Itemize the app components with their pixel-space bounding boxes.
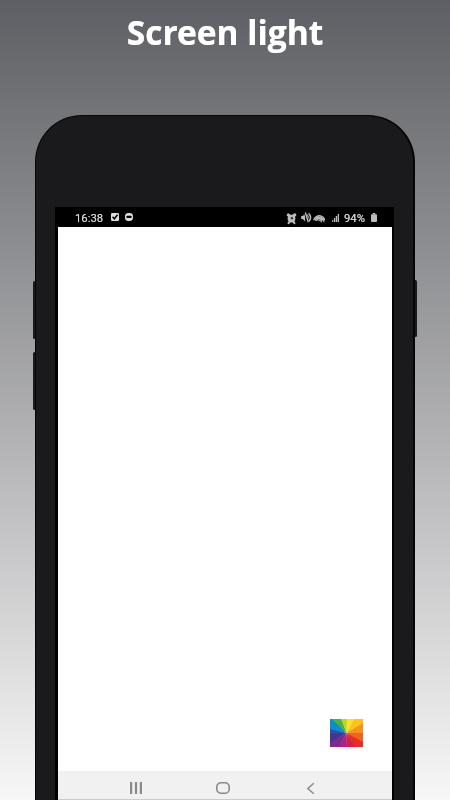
button[interactable]: Recent apps — [114, 771, 158, 799]
button[interactable]: Home — [201, 771, 245, 799]
button[interactable]: Back — [289, 771, 333, 799]
staticText: 16:38 — [75, 212, 104, 225]
staticText: Screen light — [0, 9, 450, 55]
staticText: 94% — [344, 212, 365, 225]
